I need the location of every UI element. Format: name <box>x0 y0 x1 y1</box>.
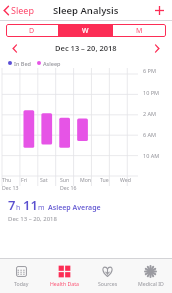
staticText: Tue <box>100 176 109 183</box>
button[interactable]: D <box>6 24 58 37</box>
staticText: Asleep Average <box>48 203 101 213</box>
staticText: M <box>136 26 143 36</box>
staticText: 7 <box>8 196 16 214</box>
staticText: Sleep Analysis <box>53 4 119 17</box>
button[interactable]: Previous week <box>8 41 22 55</box>
staticText: 10 PM <box>143 89 160 96</box>
staticText: D <box>29 26 35 36</box>
button[interactable]: Today <box>0 259 43 293</box>
button[interactable]: W <box>59 24 112 37</box>
staticText: Mon <box>80 176 92 183</box>
staticText: Thu <box>2 176 12 183</box>
staticText: 11 <box>23 196 38 214</box>
staticText: Sun <box>60 176 70 183</box>
button[interactable]: Sleep <box>0 2 37 18</box>
staticText: Sources <box>98 280 118 287</box>
staticText: W <box>82 26 89 36</box>
staticText: Medical ID <box>138 280 164 287</box>
button[interactable]: Sources <box>86 259 129 293</box>
staticText: Health Data <box>50 280 79 287</box>
staticText: Dec 13 – 20, 2018 <box>55 43 117 53</box>
staticText: Dec 13 <box>2 184 19 191</box>
button[interactable]: Next week <box>150 41 164 55</box>
staticText: Wed <box>120 176 131 183</box>
staticText: Fri <box>21 176 28 183</box>
staticText: In Bed <box>14 60 31 67</box>
staticText: 10 AM <box>143 152 160 159</box>
staticText: 6 AM <box>143 131 157 138</box>
button[interactable]: Add data <box>151 2 167 18</box>
staticText: Asleep <box>43 60 61 67</box>
staticText: Sleep <box>11 4 34 16</box>
staticText: m <box>38 203 45 213</box>
staticText: 2 AM <box>143 110 157 117</box>
staticText: Dec 13 – 20, 2018 <box>8 215 57 223</box>
button[interactable]: Medical ID <box>129 259 172 293</box>
staticText: Dec 16 <box>60 184 77 191</box>
staticText: Today <box>14 280 29 287</box>
staticText: h <box>16 203 21 213</box>
staticText: Sat <box>40 176 48 183</box>
button[interactable]: M <box>113 24 166 37</box>
button[interactable]: Health Data <box>43 259 86 293</box>
staticText: 6 PM <box>143 67 156 74</box>
